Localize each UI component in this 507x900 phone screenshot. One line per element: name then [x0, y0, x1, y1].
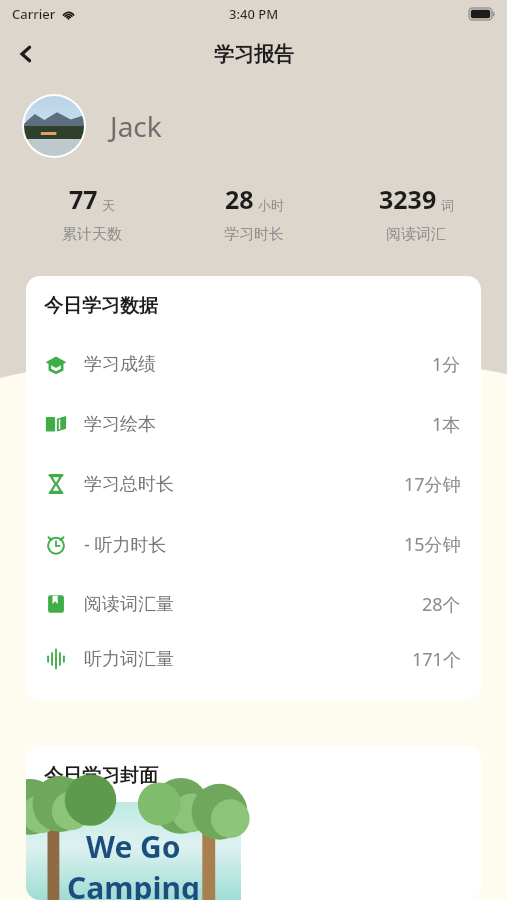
staticText: 学习时长: [224, 225, 284, 244]
button[interactable]: 学习绘本: [44, 394, 461, 454]
staticText: 15分钟: [404, 532, 461, 557]
button[interactable]: We Go Camping book cover: [26, 802, 241, 900]
staticText: 171个: [412, 647, 461, 672]
button[interactable]: 学习总时长: [44, 454, 461, 514]
staticText: 77: [69, 182, 98, 216]
staticText: Carrier: [12, 5, 56, 23]
staticText: We Go: [86, 826, 181, 867]
staticText: 学习成绩: [84, 353, 156, 376]
staticText: 今日学习数据: [44, 294, 158, 318]
staticText: 听力词汇量: [84, 648, 174, 671]
staticText: 1分: [432, 352, 461, 377]
staticText: 3239: [379, 182, 437, 216]
staticText: 阅读词汇量: [84, 593, 174, 616]
button[interactable]: 今日学习数据: [26, 276, 481, 700]
button[interactable]: 阅读词汇量: [44, 574, 461, 634]
staticText: 28: [225, 182, 254, 216]
staticText: 17分钟: [404, 472, 461, 497]
button[interactable]: Back: [0, 28, 52, 80]
staticText: 28个: [422, 592, 461, 617]
staticText: Camping: [67, 867, 200, 900]
staticText: 学习报告: [214, 42, 294, 67]
staticText: Jack: [110, 107, 162, 145]
staticText: - 听力时长: [84, 532, 167, 557]
staticText: 学习绘本: [84, 413, 156, 436]
staticText: 今日学习封面: [44, 764, 158, 788]
staticText: 学习总时长: [84, 473, 174, 496]
button[interactable]: 学习成绩: [44, 334, 461, 394]
staticText: 1本: [432, 412, 461, 437]
staticText: 累计天数: [62, 225, 122, 244]
staticText: 词: [441, 197, 454, 213]
staticText: 3:40 PM: [229, 5, 279, 23]
staticText: 小时: [258, 197, 284, 213]
button[interactable]: - 听力时长: [44, 514, 461, 574]
button[interactable]: 今日学习封面: [26, 746, 481, 900]
button[interactable]: 听力词汇量: [44, 634, 461, 684]
staticText: 阅读词汇: [386, 225, 446, 244]
button[interactable]: Avatar: [24, 96, 84, 156]
staticText: 天: [102, 197, 115, 213]
